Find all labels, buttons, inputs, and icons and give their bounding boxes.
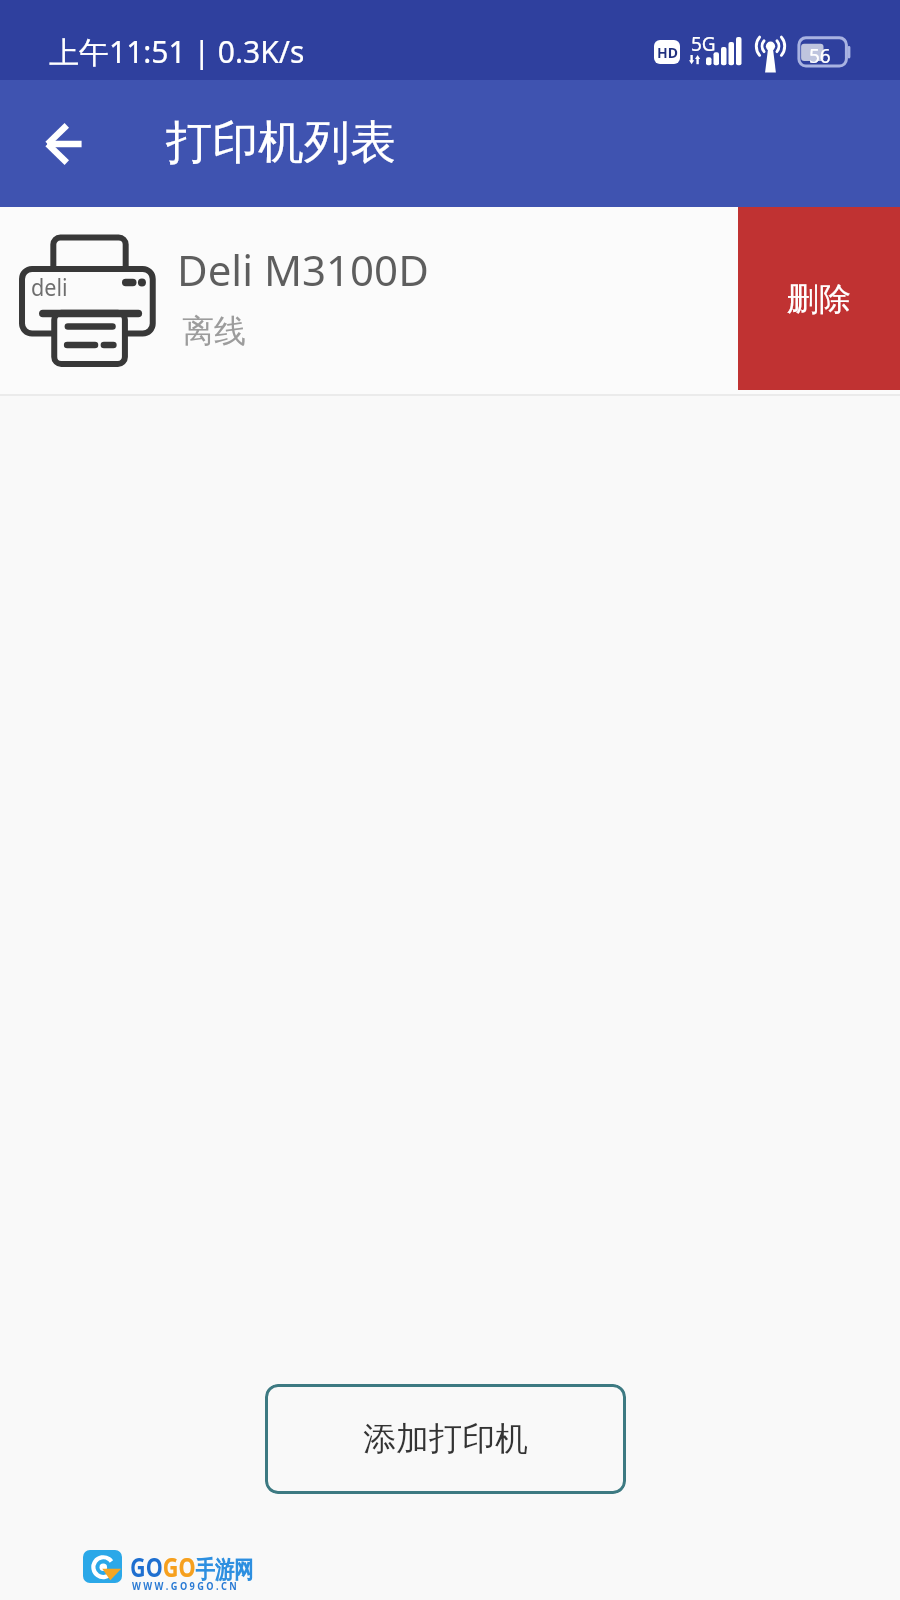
staticText: 5G [691, 31, 716, 57]
staticText: 离线 [182, 311, 246, 351]
staticText: 56 [809, 43, 831, 69]
staticText: Deli M3100D [177, 241, 429, 298]
staticText: 打印机列表 [166, 114, 396, 172]
button[interactable]: deli [0, 207, 738, 390]
staticText: 添加打印机 [363, 1418, 528, 1460]
staticText: 手游网 [196, 1555, 253, 1585]
staticText: W W W . G O 9 G O . C N [132, 1579, 237, 1593]
button[interactable]: 删除 [738, 207, 900, 390]
staticText: HD [657, 43, 678, 62]
staticText: 删除 [787, 279, 851, 319]
button[interactable]: 添加打印机 [265, 1384, 626, 1494]
button[interactable]: Back [24, 105, 102, 183]
staticText: deli [31, 270, 68, 303]
staticText: GO [163, 1548, 196, 1585]
staticText: 上午11:51 | 0.3K/s [49, 31, 305, 72]
staticText: GO [130, 1548, 163, 1585]
